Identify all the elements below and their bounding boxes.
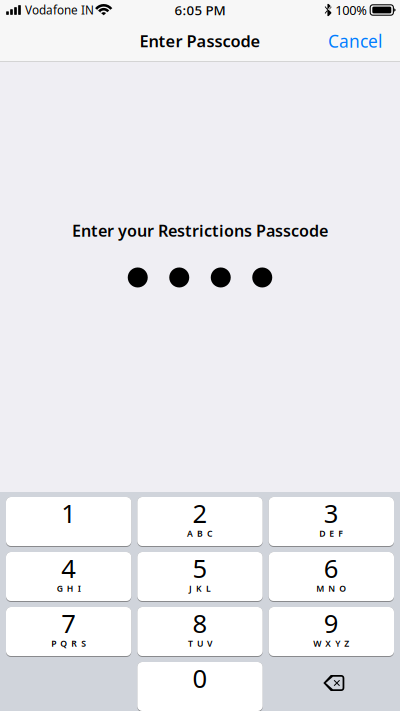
button[interactable]: 6 [269,552,394,602]
staticText: 6 [324,551,339,585]
staticText: 100% [335,1,367,19]
button[interactable]: 4 [6,552,131,602]
button[interactable]: 3 [269,497,394,547]
staticText: M N O [316,583,346,594]
staticText: 2 [192,496,207,530]
staticText: Enter your Restrictions Passcode [72,219,328,241]
button[interactable]: Delete [269,662,394,711]
button[interactable]: 1 [6,497,131,547]
button[interactable]: 5 [137,552,263,602]
staticText: 3 [324,496,339,530]
staticText: 7 [61,606,76,640]
button[interactable]: Cancel [312,20,400,62]
staticText: W X Y Z [313,638,349,649]
button[interactable]: 7 [6,607,131,657]
button[interactable]: 9 [269,607,394,657]
staticText: D E F [319,528,343,539]
staticText: A B C [187,528,213,539]
staticText: T U V [188,638,212,649]
staticText: J K L [189,583,211,594]
button[interactable]: 0 [137,662,263,711]
button[interactable]: 2 [137,497,263,547]
staticText: 6:05 PM [174,1,225,19]
staticText: Vodafone IN [25,2,94,18]
staticText: 8 [192,606,207,640]
staticText: 1 [61,496,76,530]
staticText: 0 [192,661,207,695]
staticText: Enter Passcode [139,30,260,52]
staticText: Cancel [328,29,382,53]
staticText: G H I [57,583,81,594]
staticText: 4 [61,551,76,585]
staticText: 9 [324,606,339,640]
button[interactable]: 8 [137,607,263,657]
staticText: 5 [192,551,207,585]
staticText: P Q R S [51,638,86,649]
